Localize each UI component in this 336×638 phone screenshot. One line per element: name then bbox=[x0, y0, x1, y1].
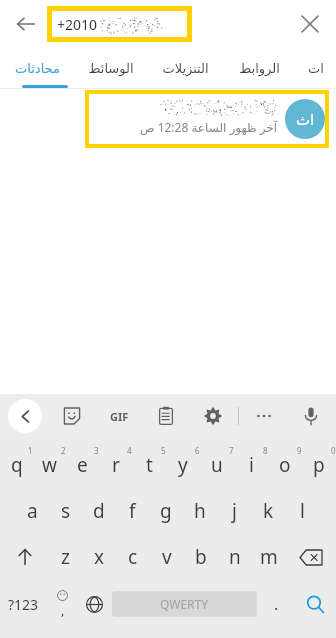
button[interactable]: Stickers bbox=[55, 399, 89, 433]
staticText: k bbox=[263, 498, 274, 524]
staticText: e bbox=[77, 452, 88, 478]
button[interactable]: l bbox=[285, 488, 319, 534]
staticText: 3 bbox=[94, 445, 99, 456]
button[interactable]: Settings bbox=[196, 399, 230, 433]
staticText: b bbox=[195, 544, 207, 570]
button[interactable]: q bbox=[0, 442, 33, 488]
button[interactable]: QWERTY bbox=[112, 591, 257, 617]
staticText: 7 bbox=[229, 445, 234, 456]
staticText: محادثات bbox=[15, 61, 60, 76]
button[interactable]: d bbox=[82, 488, 115, 534]
button[interactable]: h bbox=[183, 488, 217, 534]
staticText: التنزيلات bbox=[162, 61, 209, 76]
button[interactable]: x bbox=[82, 534, 116, 580]
staticText: h bbox=[194, 498, 206, 524]
button[interactable]: a bbox=[16, 488, 49, 534]
button[interactable]: u bbox=[200, 442, 234, 488]
button[interactable]: Emoji bbox=[46, 580, 78, 628]
button[interactable]: p bbox=[302, 442, 336, 488]
button[interactable]: Backspace bbox=[286, 534, 336, 580]
staticText: d bbox=[93, 498, 105, 524]
button[interactable]: Back bbox=[8, 6, 44, 42]
button[interactable]: Shift bbox=[0, 534, 49, 580]
staticText: ات bbox=[308, 61, 324, 76]
staticText: 8 bbox=[263, 445, 268, 456]
button[interactable]: e bbox=[66, 442, 99, 488]
button[interactable]: اث bbox=[0, 89, 336, 151]
staticText: ?123 bbox=[8, 595, 39, 614]
button[interactable]: التنزيلات bbox=[148, 48, 222, 88]
button[interactable]: Change language bbox=[78, 580, 110, 628]
button[interactable]: g bbox=[149, 488, 183, 534]
staticText: l bbox=[300, 498, 305, 524]
button[interactable]: Voice input bbox=[294, 399, 328, 433]
button[interactable]: s bbox=[49, 488, 82, 534]
staticText: , bbox=[61, 601, 65, 619]
button[interactable]: ?123 bbox=[0, 580, 46, 628]
button[interactable]: o bbox=[268, 442, 302, 488]
staticText: w bbox=[42, 452, 57, 478]
staticText: +2010 bbox=[57, 15, 98, 34]
staticText: o bbox=[279, 452, 291, 478]
staticText: 0 bbox=[331, 445, 336, 456]
staticText: u bbox=[211, 452, 223, 478]
staticText: f bbox=[129, 498, 136, 524]
button[interactable]: c bbox=[116, 534, 150, 580]
button[interactable]: Hide toolbar bbox=[8, 399, 42, 433]
button[interactable]: +2010 bbox=[52, 11, 187, 37]
button[interactable]: More options bbox=[247, 399, 281, 433]
button[interactable]: f bbox=[115, 488, 149, 534]
staticText: 4 bbox=[127, 445, 132, 456]
button[interactable]: r bbox=[99, 442, 132, 488]
staticText: الروابط bbox=[239, 61, 280, 76]
staticText: 5 bbox=[161, 445, 166, 456]
staticText: t bbox=[146, 452, 153, 478]
button[interactable]: i bbox=[234, 442, 268, 488]
button[interactable]: Clear bbox=[292, 6, 328, 42]
staticText: الوسائط bbox=[88, 61, 134, 76]
button[interactable]: m bbox=[252, 534, 286, 580]
staticText: v bbox=[162, 544, 172, 570]
staticText: z bbox=[61, 544, 70, 570]
staticText: GIF bbox=[110, 409, 129, 424]
button[interactable]: j bbox=[217, 488, 251, 534]
staticText: 9 bbox=[297, 445, 302, 456]
button[interactable]: Search bbox=[294, 580, 336, 628]
staticText: 6 bbox=[195, 445, 200, 456]
staticText: QWERTY bbox=[160, 596, 209, 612]
staticText: y bbox=[178, 452, 188, 478]
staticText: j bbox=[232, 498, 237, 524]
staticText: g bbox=[160, 498, 172, 524]
staticText: . bbox=[274, 593, 279, 615]
staticText: n bbox=[229, 544, 241, 570]
button[interactable]: z bbox=[49, 534, 82, 580]
staticText: اث bbox=[296, 111, 315, 128]
button[interactable]: . bbox=[259, 580, 294, 628]
button[interactable]: v bbox=[150, 534, 184, 580]
staticText: m bbox=[260, 544, 278, 570]
button[interactable]: الوسائط bbox=[74, 48, 148, 88]
staticText: 2 bbox=[61, 445, 66, 456]
staticText: s bbox=[61, 498, 71, 524]
button[interactable]: الروابط bbox=[222, 48, 296, 88]
staticText: x bbox=[94, 544, 105, 570]
staticText: آخر ظهور الساعة 12:28 ص bbox=[140, 119, 278, 135]
button[interactable]: w bbox=[33, 442, 66, 488]
button[interactable]: Clipboard bbox=[149, 399, 183, 433]
staticText: c bbox=[128, 544, 138, 570]
staticText: a bbox=[27, 498, 38, 524]
button[interactable]: t bbox=[132, 442, 166, 488]
button[interactable]: GIF bbox=[102, 399, 136, 433]
staticText: 1 bbox=[28, 445, 33, 456]
staticText: p bbox=[313, 452, 325, 478]
button[interactable]: y bbox=[166, 442, 200, 488]
button[interactable]: k bbox=[251, 488, 285, 534]
button[interactable]: محادثات bbox=[0, 48, 74, 88]
button[interactable]: ات bbox=[296, 48, 336, 88]
staticText: i bbox=[249, 452, 254, 478]
staticText: q bbox=[11, 452, 23, 478]
staticText: r bbox=[112, 452, 120, 478]
button[interactable]: b bbox=[184, 534, 218, 580]
button[interactable]: n bbox=[218, 534, 252, 580]
